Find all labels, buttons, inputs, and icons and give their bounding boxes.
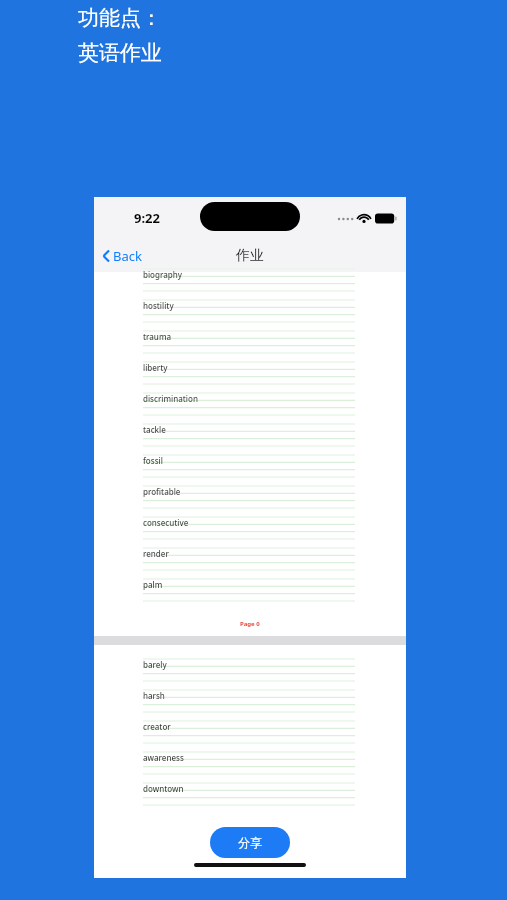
button[interactable]: harsh [143,687,355,718]
button[interactable]: creator [143,718,355,749]
button[interactable]: Back [94,242,152,270]
staticText: palm [143,579,163,590]
button[interactable]: hostility [143,297,355,328]
button[interactable]: consecutive [143,514,355,545]
button[interactable]: barely [143,656,355,687]
staticText: 英语作业 [78,40,162,66]
button[interactable]: tackle [143,421,355,452]
other: Home indicator [194,863,306,867]
staticText: 分享 [238,835,262,850]
staticText: Page 0 [240,620,260,628]
button[interactable]: biography [143,266,355,297]
button[interactable]: awareness [143,749,355,780]
staticText: 功能点： [78,5,162,31]
staticText: 作业 [236,247,264,265]
button[interactable]: palm [143,576,355,607]
staticText: Back [113,247,142,265]
staticText: fossil [143,455,163,466]
staticText: render [143,548,169,559]
button[interactable]: downtown [143,780,355,811]
staticText: trauma [143,331,172,342]
button[interactable]: render [143,545,355,576]
staticText: awareness [143,752,184,763]
staticText: biography [143,269,182,280]
button[interactable]: liberty [143,359,355,390]
staticText: downtown [143,783,184,794]
staticText: tackle [143,424,166,435]
button[interactable]: trauma [143,328,355,359]
staticText: harsh [143,690,165,701]
staticText: profitable [143,486,181,497]
button[interactable]: fossil [143,452,355,483]
staticText: hostility [143,300,174,311]
button[interactable]: discrimination [143,390,355,421]
staticText: discrimination [143,393,198,404]
staticText: creator [143,721,171,732]
staticText: 9:22 [134,209,160,227]
staticText: barely [143,659,167,670]
staticText: liberty [143,362,168,373]
staticText: consecutive [143,517,189,528]
button[interactable]: profitable [143,483,355,514]
button[interactable]: 分享 [210,827,290,858]
